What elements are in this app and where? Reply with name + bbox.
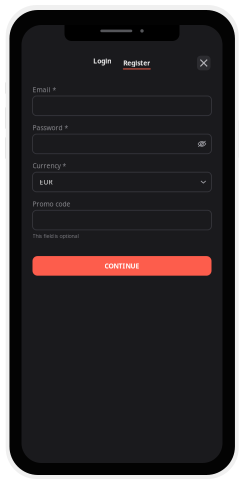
staticText: Email * [32,85,56,94]
button[interactable]: Register [122,56,152,70]
staticText: Password * [32,123,68,132]
staticText: Register [123,58,150,67]
staticText: EUR [39,178,52,186]
staticText: Login [93,57,111,65]
staticText: CONTINUE [104,261,139,270]
button[interactable]: CONTINUE [32,256,211,276]
staticText: Currency * [32,161,66,170]
staticText: Promo code [32,199,70,208]
staticText: This field is optional [32,232,78,239]
button[interactable]: Close [197,56,210,70]
button[interactable]: Login [92,55,112,71]
